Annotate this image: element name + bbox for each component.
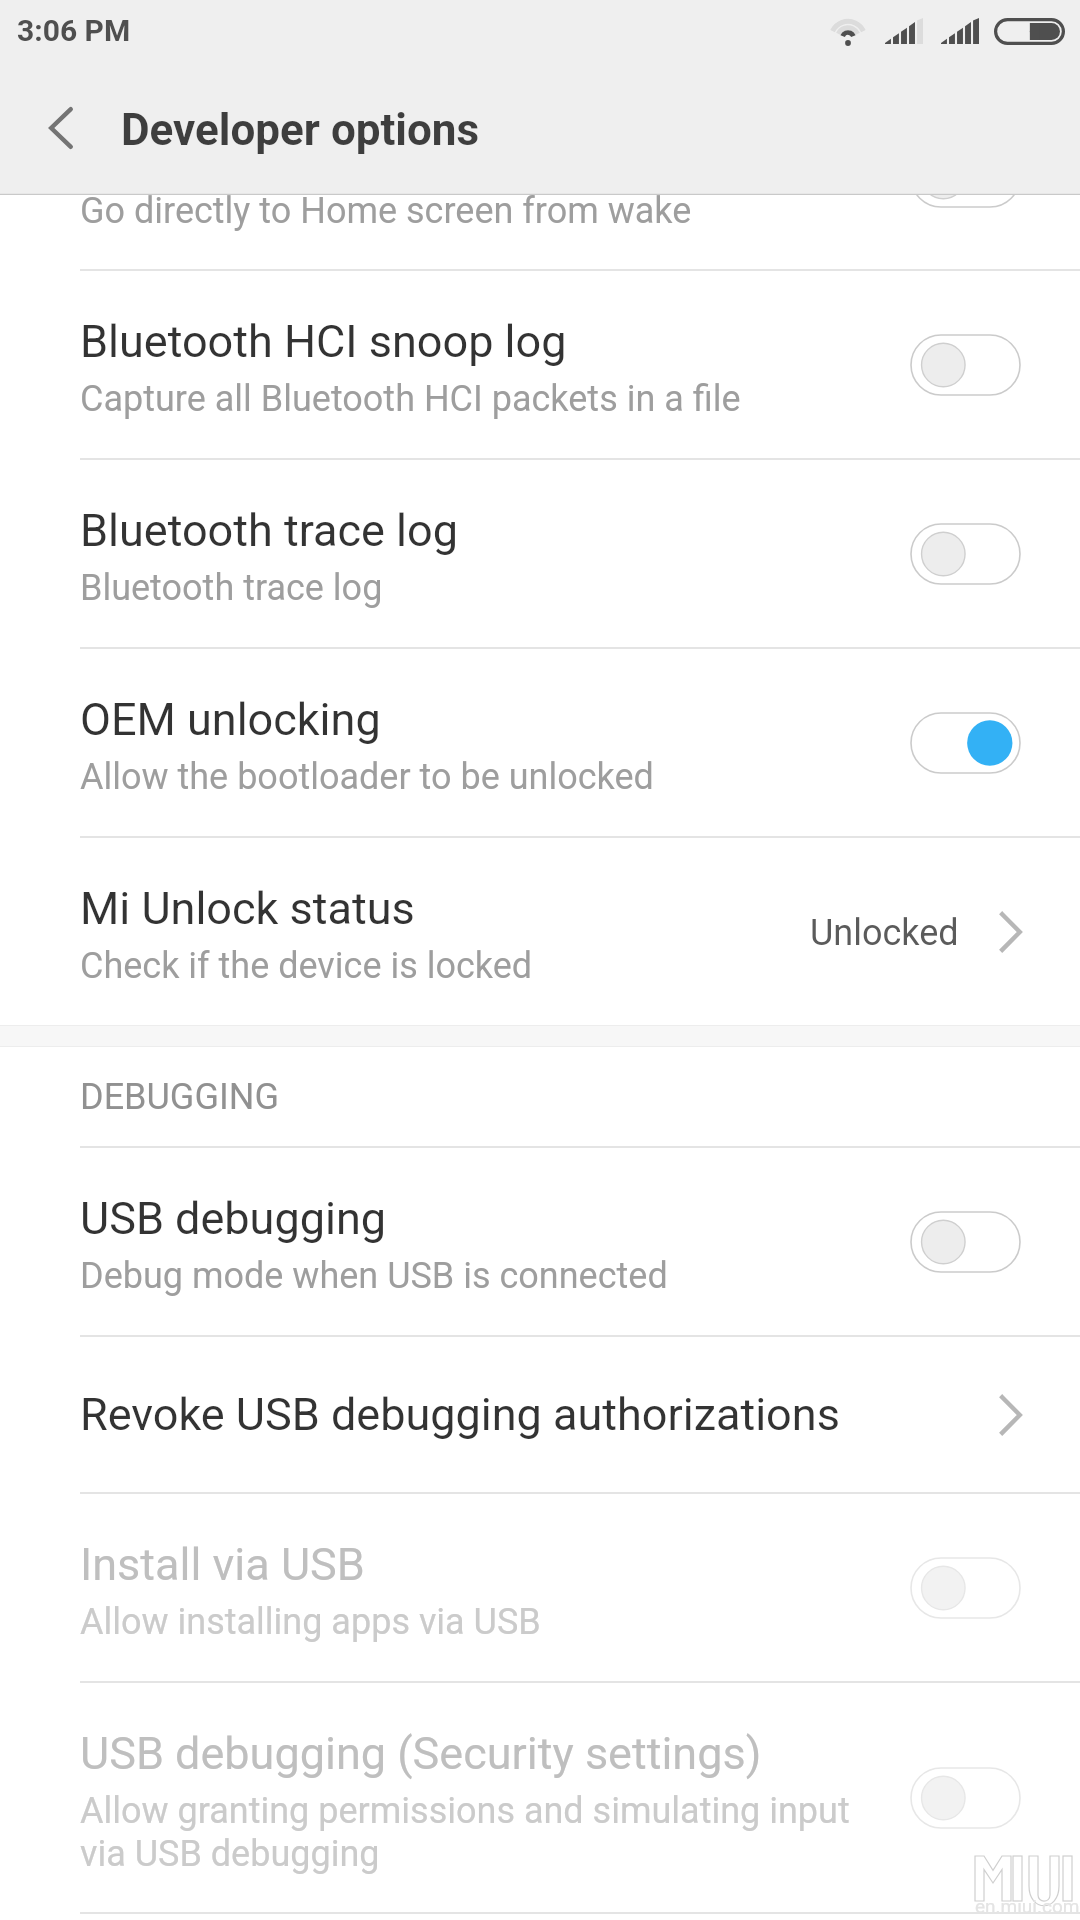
staticText: en.miui.com [975, 1895, 1080, 1917]
staticText: Allow granting permissions and simulatin… [80, 1790, 850, 1875]
staticText: 3:06 PM [17, 13, 131, 48]
staticText: Revoke USB debugging authorizations [80, 1388, 980, 1441]
staticText: OEM unlocking [80, 693, 381, 746]
button[interactable]: OEM unlocking [0, 649, 1080, 836]
staticText: Bluetooth trace log [80, 504, 458, 557]
button[interactable]: USB debugging (Security settings) [0, 1683, 1080, 1912]
staticText: Allow installing apps via USB [80, 1601, 541, 1643]
staticText: Go directly to Home screen from wake [80, 193, 692, 232]
staticText: DEBUGGING [80, 1076, 279, 1118]
button[interactable]: Bluetooth trace log [0, 460, 1080, 647]
staticText: Unlocked [810, 912, 959, 954]
staticText: Capture all Bluetooth HCI packets in a f… [80, 378, 741, 420]
staticText: Install via USB [80, 1538, 365, 1591]
staticText: Mi Unlock status [80, 882, 415, 935]
button[interactable]: Mi Unlock status [0, 838, 1080, 1025]
staticText: Bluetooth HCI snoop log [80, 315, 567, 368]
staticText: Check if the device is locked [80, 945, 533, 987]
staticText: Allow the bootloader to be unlocked [80, 756, 654, 798]
staticText: USB debugging (Security settings) [80, 1727, 762, 1780]
button[interactable]: Bluetooth HCI snoop log [0, 271, 1080, 458]
staticText: Debug mode when USB is connected [80, 1255, 668, 1297]
button[interactable]: Back [0, 66, 122, 193]
staticText: Developer options [121, 104, 480, 156]
button[interactable]: Install via USB [0, 1494, 1080, 1681]
button[interactable]: USB debugging [0, 1148, 1080, 1335]
staticText: Bluetooth trace log [80, 567, 383, 609]
button[interactable]: Revoke USB debugging authorizations [0, 1337, 1080, 1492]
staticText: USB debugging [80, 1192, 387, 1245]
button[interactable]: Go directly to Home screen from wake [0, 193, 1080, 269]
